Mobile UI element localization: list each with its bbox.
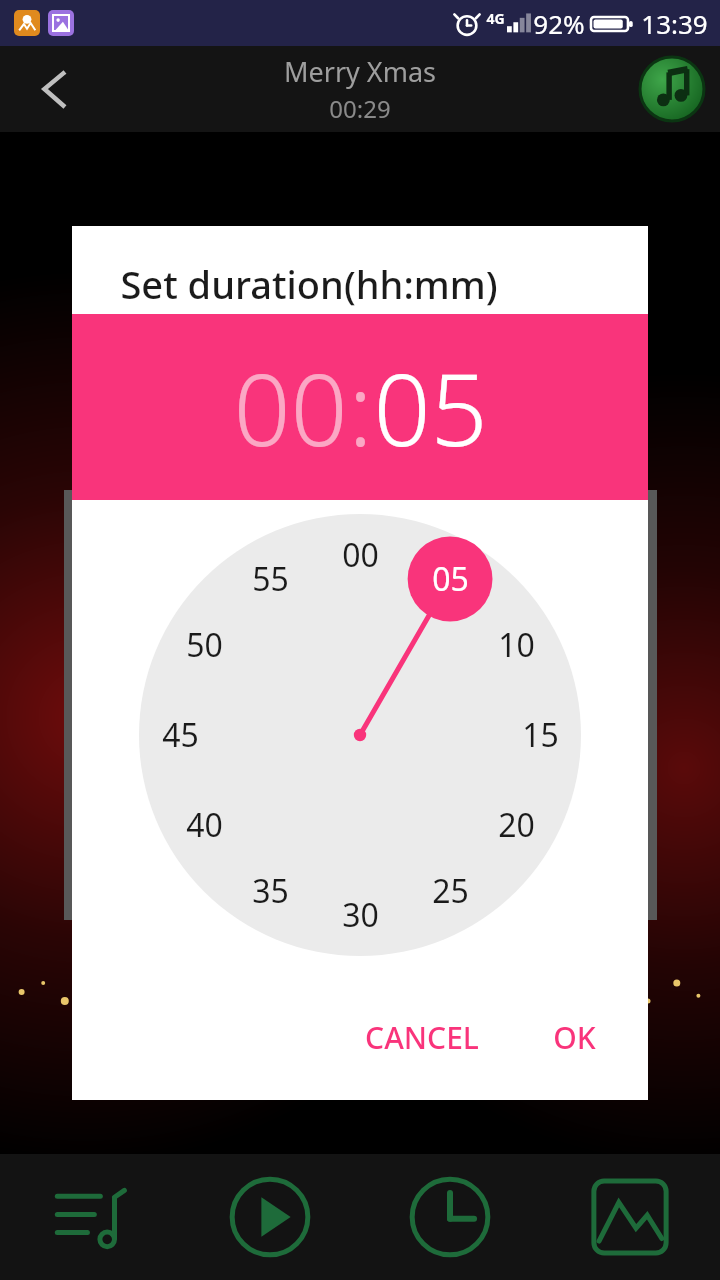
- staticText: 55: [252, 557, 289, 601]
- staticText: 05: [373, 339, 488, 475]
- staticText: 15: [522, 713, 559, 757]
- staticText: 45: [162, 713, 199, 757]
- button[interactable]: Music: [640, 57, 704, 121]
- button[interactable]: Minute picker: [139, 514, 581, 956]
- staticText: 13:39: [641, 6, 708, 41]
- staticText: :: [348, 339, 373, 475]
- staticText: OK: [553, 1017, 596, 1058]
- staticText: 20: [498, 803, 535, 847]
- button[interactable]: CANCEL: [343, 1003, 501, 1072]
- button[interactable]: Playlist: [0, 1154, 180, 1280]
- staticText: 4G: [486, 9, 505, 28]
- button[interactable]: Back: [0, 46, 110, 132]
- button[interactable]: Timer: [360, 1154, 540, 1280]
- staticText: 00:29: [329, 92, 391, 125]
- button[interactable]: OK: [531, 1003, 618, 1072]
- staticText: CANCEL: [365, 1017, 479, 1058]
- staticText: Set duration(hh:mm): [120, 258, 498, 310]
- staticText: 92%: [533, 6, 585, 41]
- staticText: 30: [342, 893, 379, 937]
- button[interactable]: Pictures: [540, 1154, 720, 1280]
- staticText: 05: [432, 557, 469, 601]
- staticText: 00: [233, 339, 348, 475]
- button[interactable]: Play: [180, 1154, 360, 1280]
- staticText: Merry Xmas: [284, 53, 436, 90]
- staticText: 25: [432, 869, 469, 913]
- staticText: 00: [342, 533, 379, 577]
- staticText: 35: [252, 869, 289, 913]
- button[interactable]: 00: [233, 339, 348, 475]
- staticText: 10: [498, 623, 535, 667]
- staticText: 50: [186, 623, 223, 667]
- staticText: 40: [186, 803, 223, 847]
- button[interactable]: 05: [373, 339, 488, 475]
